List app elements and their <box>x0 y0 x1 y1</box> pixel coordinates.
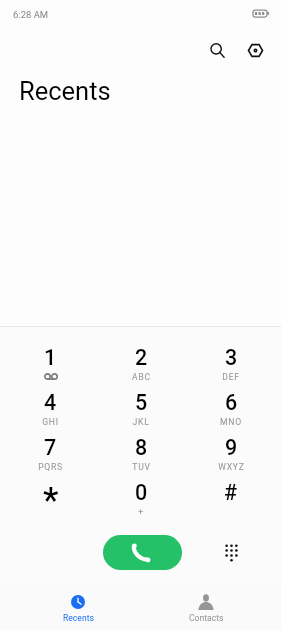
staticText: Contacts <box>189 613 224 623</box>
button[interactable]: 4 <box>5 387 96 432</box>
staticText: 0 <box>135 480 148 505</box>
button[interactable]: Recents <box>44 586 112 628</box>
button[interactable]: Dialpad <box>215 534 248 567</box>
staticText: # <box>224 480 238 505</box>
button[interactable]: 3 <box>186 342 276 387</box>
button[interactable]: 2 <box>96 342 186 387</box>
button[interactable]: Settings <box>239 34 272 67</box>
button[interactable]: Search <box>201 34 234 67</box>
button[interactable]: Call <box>103 535 182 570</box>
staticText: 9 <box>225 435 238 460</box>
button[interactable]: 9 <box>186 432 276 477</box>
button[interactable]: 1 <box>5 342 96 387</box>
button[interactable]: # <box>186 477 276 522</box>
button[interactable]: 8 <box>96 432 186 477</box>
staticText: * <box>43 480 59 521</box>
staticText: 7 <box>44 435 57 460</box>
staticText: TUV <box>132 462 151 472</box>
staticText: ABC <box>132 372 151 382</box>
staticText: 5 <box>135 390 148 415</box>
staticText: 6:28 AM <box>13 9 49 20</box>
staticText: JKL <box>132 417 150 427</box>
staticText: 8 <box>135 435 148 460</box>
staticText: PQRS <box>38 462 63 472</box>
staticText: Recents <box>63 613 94 623</box>
staticText: GHI <box>42 417 59 427</box>
staticText: + <box>138 507 144 517</box>
button[interactable]: 7 <box>5 432 96 477</box>
staticText: 1 <box>44 345 57 370</box>
staticText: 6 <box>225 390 238 415</box>
staticText: Recents <box>19 76 111 106</box>
staticText: 2 <box>135 345 148 370</box>
staticText: MNO <box>220 417 242 427</box>
staticText: DEF <box>222 372 240 382</box>
staticText: 4 <box>44 390 57 415</box>
button[interactable]: 6 <box>186 387 276 432</box>
button[interactable]: Contacts <box>172 586 240 628</box>
button[interactable]: 0 <box>96 477 186 522</box>
staticText: WXYZ <box>218 462 245 472</box>
button[interactable]: 5 <box>96 387 186 432</box>
button[interactable]: * <box>5 477 96 522</box>
staticText: 3 <box>225 345 238 370</box>
